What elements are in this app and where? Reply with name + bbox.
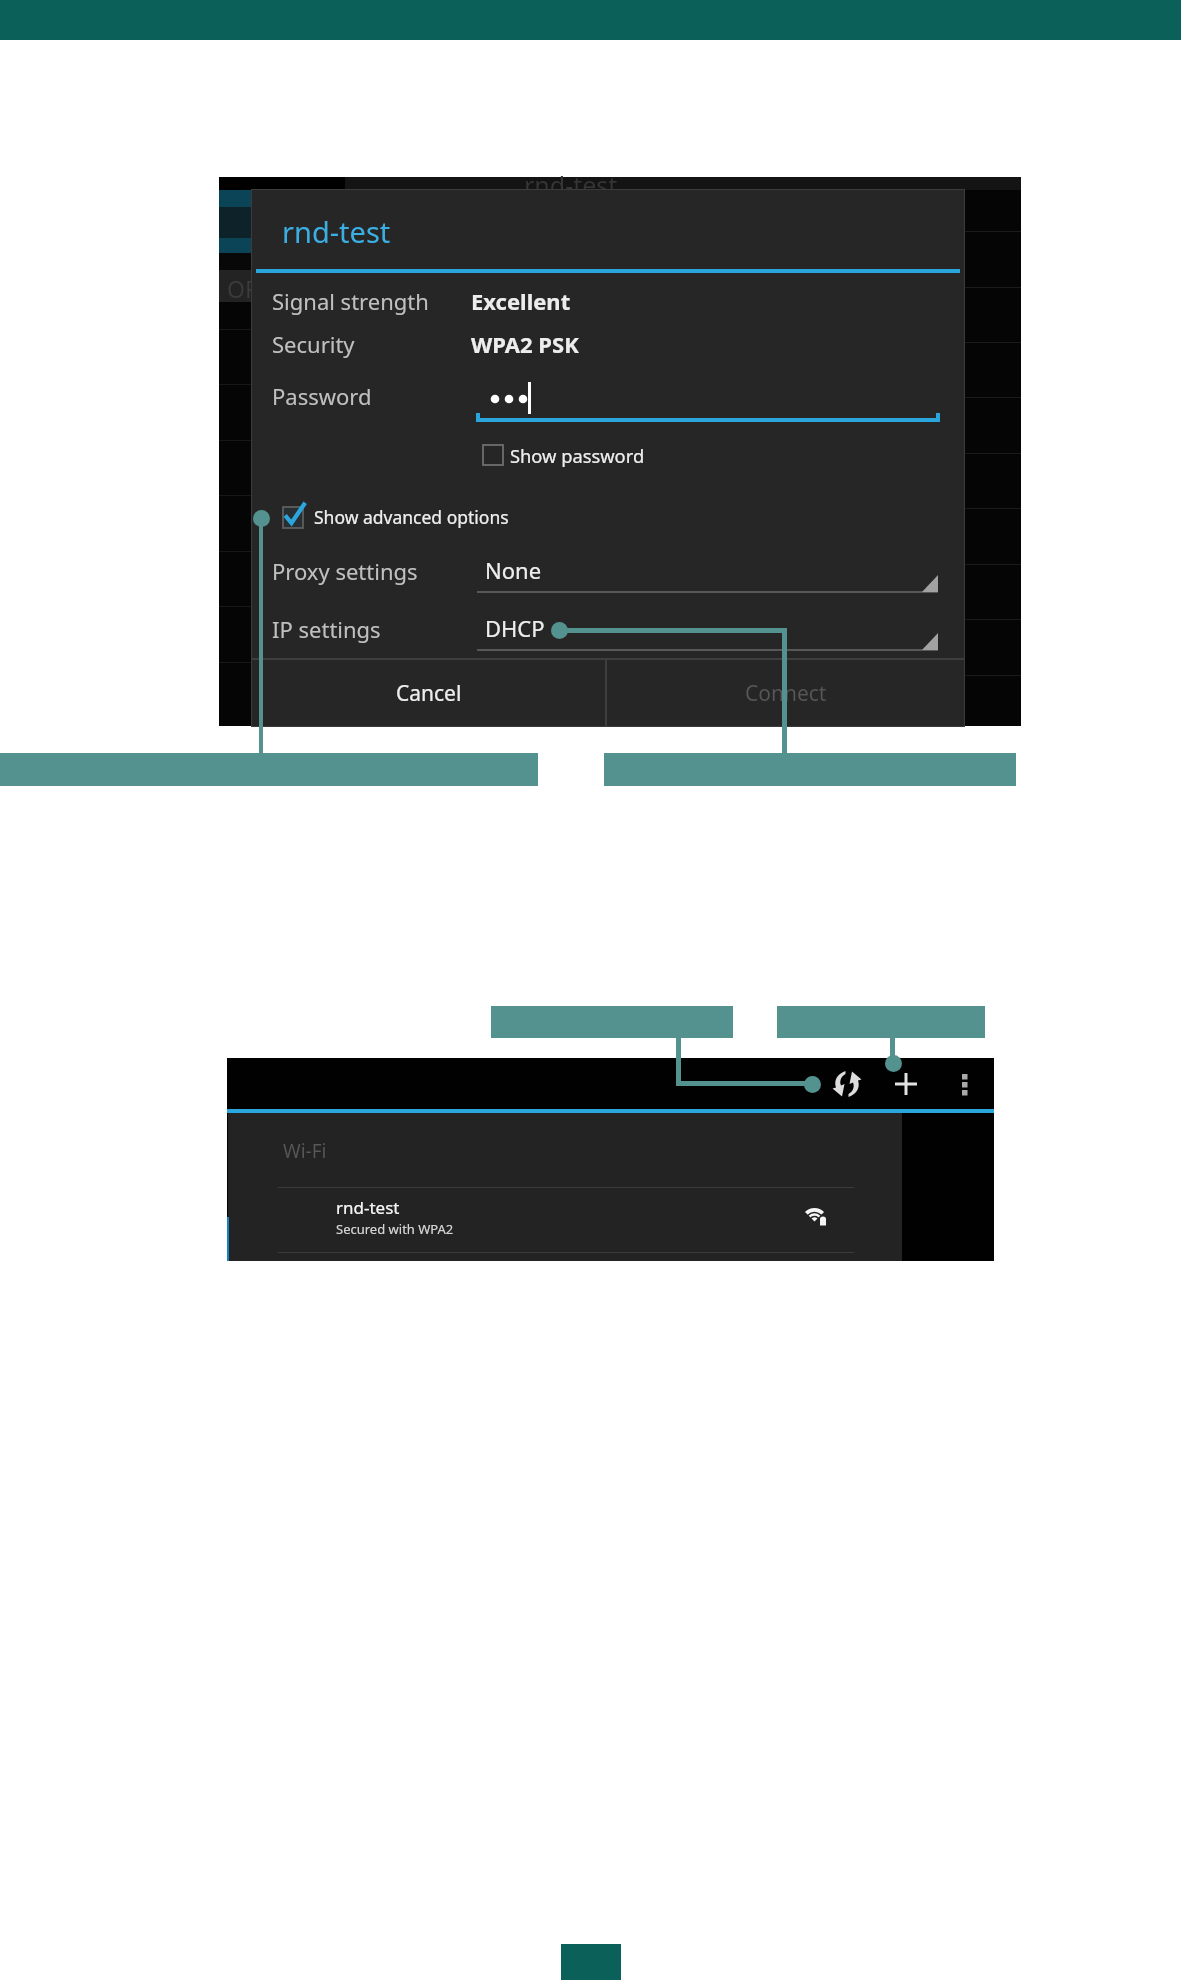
staticText: Show advanced options — [314, 505, 509, 529]
button[interactable]: Show advanced options — [278, 501, 505, 533]
button[interactable]: Add network — [895, 1073, 919, 1097]
button[interactable]: Show password — [478, 440, 643, 470]
staticText: Security — [272, 329, 355, 359]
button[interactable]: Cancel — [252, 660, 605, 726]
staticText: rnd-test — [524, 168, 618, 202]
button[interactable]: More options — [953, 1074, 977, 1098]
staticText: OF — [227, 273, 257, 304]
staticText: rnd-test — [282, 212, 391, 251]
staticText: rnd-test — [336, 1196, 400, 1219]
staticText: Secured with WPA2 — [336, 1220, 454, 1238]
staticText: WPA2 PSK — [471, 329, 579, 359]
staticText: Wi-Fi — [283, 1138, 327, 1164]
staticText: None — [485, 555, 542, 585]
staticText: DHCP — [485, 613, 545, 643]
staticText: Cancel — [396, 679, 462, 708]
button[interactable]: Refresh — [833, 1070, 861, 1098]
button[interactable]: rnd-test — [278, 1188, 854, 1252]
staticText: Show password — [510, 443, 645, 468]
staticText: Signal strength — [272, 286, 429, 316]
button[interactable]: Connect — [607, 660, 964, 726]
staticText: Proxy settings — [272, 556, 418, 586]
staticText: IP settings — [272, 614, 381, 644]
staticText: Excellent — [471, 286, 571, 316]
staticText: Password — [272, 381, 372, 411]
staticText: Connect — [745, 679, 827, 708]
